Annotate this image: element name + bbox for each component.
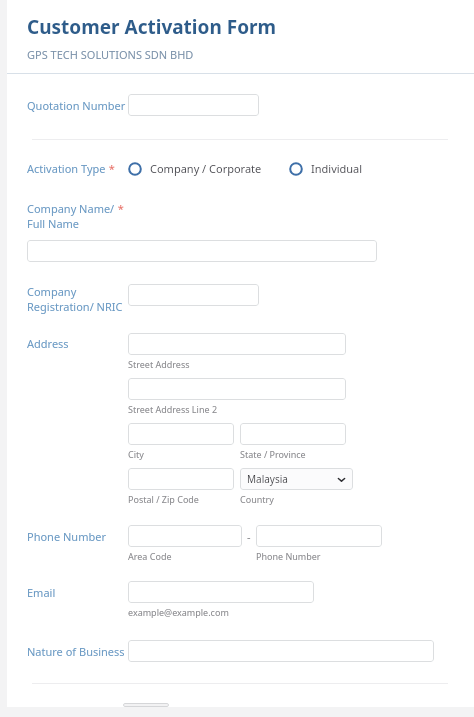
- button[interactable]: [256, 525, 382, 547]
- staticText: City: [128, 448, 144, 460]
- staticText: Malaysia: [247, 472, 288, 486]
- staticText: Street Address Line 2: [128, 403, 218, 415]
- button[interactable]: [128, 525, 242, 547]
- staticText: Country: [240, 493, 274, 505]
- staticText: Company / Corporate: [150, 161, 262, 176]
- button[interactable]: [27, 240, 377, 262]
- staticText: *: [115, 201, 124, 216]
- staticText: Email: [27, 585, 56, 600]
- staticText: *: [106, 161, 115, 176]
- staticText: Street Address: [128, 358, 190, 370]
- button[interactable]: [128, 378, 346, 400]
- button[interactable]: [128, 94, 259, 116]
- staticText: Area Code: [128, 550, 172, 562]
- button[interactable]: Malaysia: [240, 468, 353, 490]
- staticText: GPS TECH SOLUTIONS SDN BHD: [27, 47, 194, 62]
- staticText: example@example.com: [128, 606, 229, 618]
- staticText: Nature of Business: [27, 644, 125, 659]
- staticText: -: [247, 529, 251, 544]
- staticText: Activation Type: [27, 161, 106, 176]
- staticText: Customer Activation Form: [27, 14, 277, 40]
- button[interactable]: [128, 284, 259, 306]
- button[interactable]: [128, 423, 234, 445]
- staticText: Next: [134, 703, 159, 707]
- staticText: Postal / Zip Code: [128, 493, 199, 505]
- staticText: Phone Number: [27, 529, 106, 544]
- button[interactable]: [128, 333, 346, 355]
- staticText: Company Name/ Full Name: [27, 201, 115, 231]
- button[interactable]: Company / Corporate: [128, 161, 262, 176]
- staticText: State / Province: [240, 448, 306, 460]
- button[interactable]: [240, 423, 346, 445]
- button[interactable]: Next: [123, 703, 169, 707]
- button[interactable]: [128, 468, 234, 490]
- staticText: Quotation Number: [27, 98, 126, 113]
- staticText: Address: [27, 336, 69, 351]
- button[interactable]: [128, 581, 314, 603]
- button[interactable]: Individual: [289, 161, 363, 176]
- staticText: Company Registration/ NRIC: [27, 284, 123, 314]
- staticText: Phone Number: [256, 550, 321, 562]
- button[interactable]: [128, 640, 434, 662]
- staticText: Individual: [311, 161, 363, 176]
